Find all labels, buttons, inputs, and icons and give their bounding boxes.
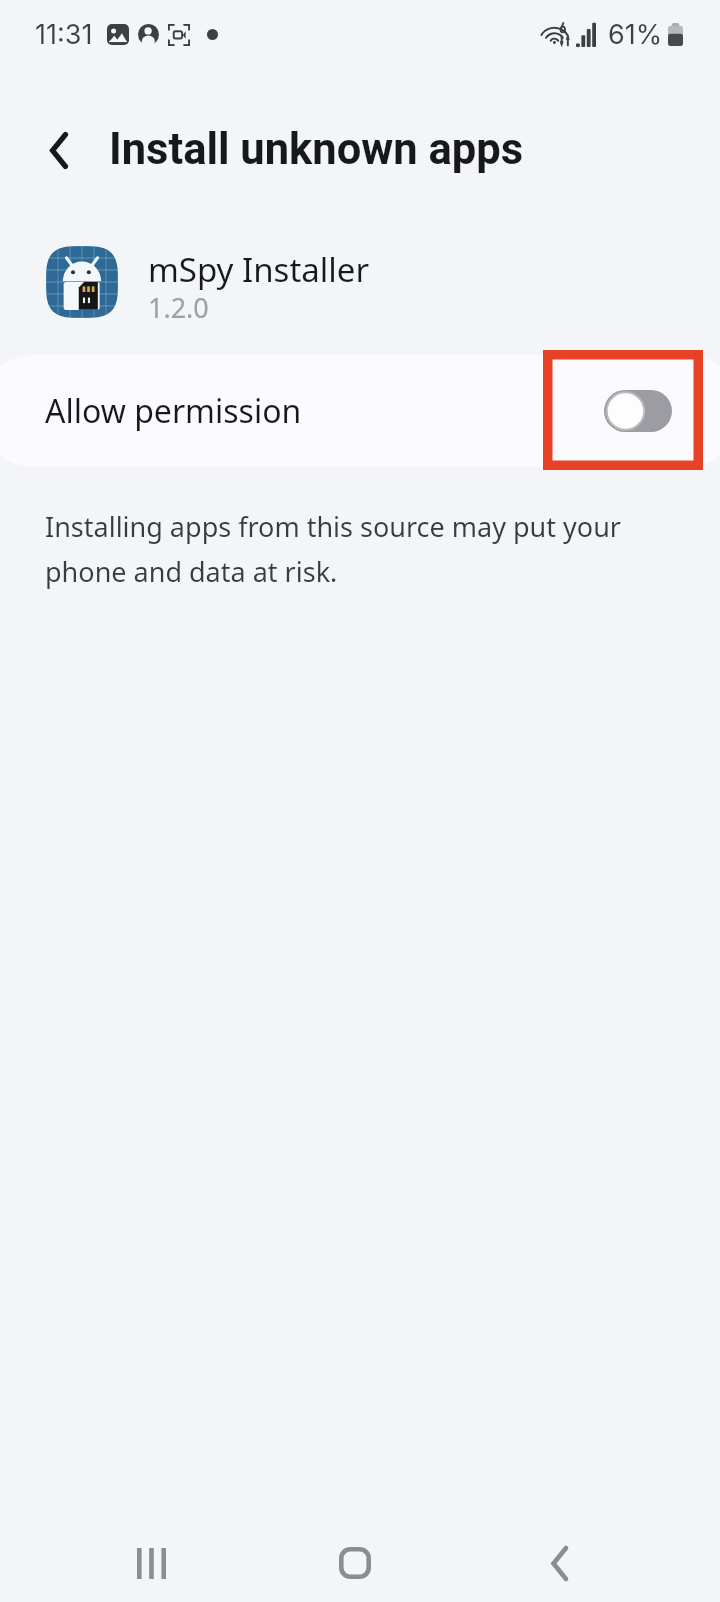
button[interactable]: Navigate up <box>28 119 90 181</box>
button[interactable]: Home <box>315 1523 395 1602</box>
staticText: 11:31 <box>35 18 93 51</box>
staticText: mSpy Installer <box>148 247 370 292</box>
button[interactable]: Allow permission toggle, off <box>604 390 672 432</box>
button[interactable]: Back <box>519 1523 599 1602</box>
staticText: Installing apps from this source may put… <box>45 508 621 590</box>
staticText: 1.2.0 <box>148 289 209 326</box>
staticText: 61% <box>608 18 663 51</box>
button[interactable]: Allow permission <box>0 355 720 467</box>
button[interactable]: Recent apps <box>111 1523 191 1602</box>
staticText: Install unknown apps <box>109 124 524 175</box>
staticText: Allow permission <box>45 389 302 433</box>
